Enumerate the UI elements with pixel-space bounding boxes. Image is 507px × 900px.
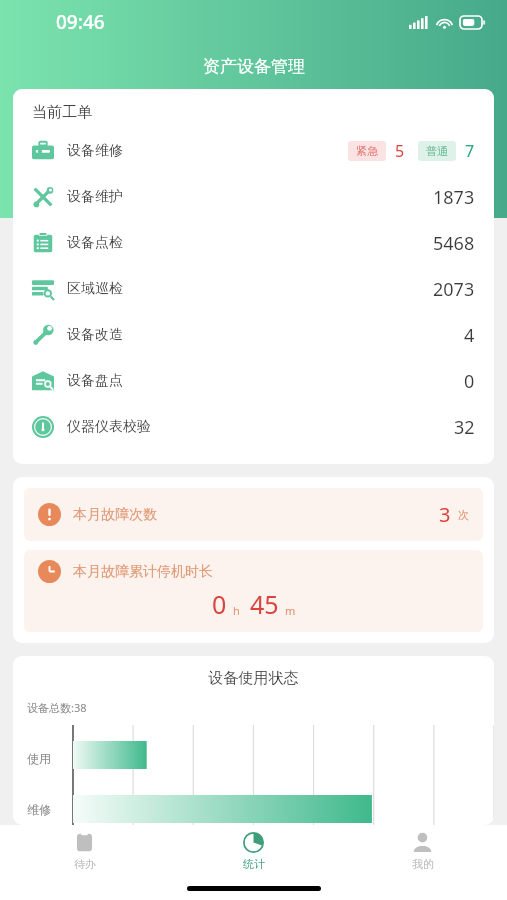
staticText: 维修 [27,802,51,817]
staticText: 待办 [74,857,96,871]
staticText: 2073 [433,277,475,302]
staticText: 我的 [412,857,434,871]
staticText: 4 [464,323,475,348]
staticText: 45 [250,587,279,621]
staticText: 本月故障累计停机时长 [73,563,213,581]
staticText: 5 [395,140,405,162]
button[interactable]: 区域巡检 [13,266,494,312]
staticText: 统计 [243,857,265,871]
staticText: 设备维修 [67,142,123,160]
button[interactable]: 统计 [169,825,338,877]
staticText: 设备点检 [67,234,123,252]
staticText: 0 [212,587,227,621]
button[interactable]: 设备盘点 [13,358,494,404]
staticText: 0 [464,369,475,394]
button[interactable]: 设备点检 [13,220,494,266]
staticText: 1873 [433,185,475,210]
staticText: 32 [454,415,475,440]
staticText: 次 [458,508,469,522]
staticText: 设备盘点 [67,372,123,390]
button[interactable]: 设备维修 [13,128,494,174]
staticText: 紧急 [356,144,378,158]
staticText: m [285,603,296,618]
staticText: 区域巡检 [67,280,123,298]
staticText: 7 [465,140,475,162]
button[interactable]: 待办 [0,825,169,877]
button[interactable]: 仪器仪表校验 [13,404,494,450]
staticText: 设备维护 [67,188,123,206]
staticText: 09:46 [56,9,105,35]
staticText: 设备改造 [67,326,123,344]
staticText: 3 [439,501,451,528]
button[interactable]: 我的 [338,825,507,877]
staticText: 设备使用状态 [13,669,494,688]
staticText: 普通 [426,144,448,158]
button[interactable]: 设备改造 [13,312,494,358]
button[interactable]: 设备维护 [13,174,494,220]
staticText: 设备总数:38 [27,700,87,715]
staticText: 资产设备管理 [203,56,305,77]
staticText: 本月故障次数 [73,506,157,524]
staticText: 当前工单 [32,103,92,122]
staticText: h [233,603,240,618]
button[interactable]: 本月故障次数 [24,488,483,541]
staticText: 5468 [433,231,475,256]
staticText: 仪器仪表校验 [67,418,151,436]
staticText: 使用 [27,751,51,766]
button[interactable]: 本月故障累计停机时长 [24,550,483,632]
